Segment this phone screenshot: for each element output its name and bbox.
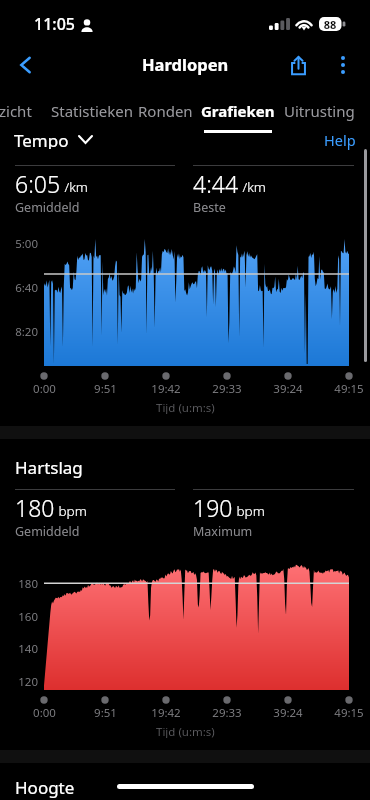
staticText: /km — [61, 178, 88, 196]
staticText: 19:42 — [151, 705, 181, 719]
staticText: Tempo — [14, 129, 69, 149]
staticText: bpm — [233, 502, 265, 520]
staticText: 0:00 — [33, 381, 56, 395]
staticText: 49:15 — [334, 381, 364, 395]
button[interactable]: Statistieken — [41, 96, 143, 134]
staticText: 6:05 — [15, 168, 61, 199]
staticText: Hardlopen — [142, 53, 229, 75]
staticText: /km — [239, 178, 266, 196]
staticText: Maximum — [193, 523, 253, 540]
staticText: Hartslag — [15, 456, 83, 479]
button[interactable]: Share — [277, 43, 319, 87]
button[interactable]: Uitrusting — [278, 96, 360, 134]
staticText: Ronden — [138, 101, 193, 121]
staticText: 29:33 — [212, 381, 242, 395]
button[interactable]: zicht — [0, 96, 40, 134]
staticText: Gemiddeld — [15, 199, 80, 216]
staticText: 29:33 — [212, 705, 242, 719]
staticText: 180 — [15, 492, 55, 523]
staticText: 49:15 — [334, 705, 364, 719]
staticText: 180 — [18, 576, 38, 590]
staticText: bpm — [55, 502, 87, 520]
staticText: 190 — [193, 492, 233, 523]
button[interactable]: Ronden — [132, 96, 198, 134]
staticText: 120 — [18, 674, 38, 688]
staticText: 9:51 — [94, 381, 117, 395]
staticText: Tijd (u:m:s) — [156, 724, 215, 738]
staticText: Tijd (u:m:s) — [156, 400, 215, 414]
staticText: Help — [324, 130, 356, 150]
staticText: 9:51 — [94, 705, 117, 719]
staticText: 5:00 — [15, 236, 38, 250]
staticText: 88 — [319, 17, 341, 31]
button[interactable]: Grafieken — [195, 96, 281, 134]
button[interactable]: More options — [323, 43, 363, 87]
staticText: Gemiddeld — [15, 523, 80, 540]
staticText: Grafieken — [201, 101, 275, 121]
staticText: Statistieken — [51, 101, 134, 121]
staticText: 11:05 — [34, 13, 75, 35]
staticText: 39:24 — [273, 381, 303, 395]
button[interactable]: Help — [324, 130, 356, 150]
staticText: 4:44 — [193, 168, 239, 199]
staticText: zicht — [0, 101, 32, 121]
staticText: 0:00 — [33, 705, 56, 719]
staticText: 39:24 — [273, 705, 303, 719]
staticText: 6:40 — [15, 280, 38, 294]
staticText: Hoogte — [15, 776, 75, 799]
button[interactable]: Back — [4, 43, 47, 87]
staticText: Beste — [193, 199, 226, 216]
button[interactable]: Hoogte — [15, 776, 75, 799]
button[interactable]: Tempo — [14, 129, 92, 149]
staticText: 19:42 — [151, 381, 181, 395]
staticText: 8:20 — [15, 324, 38, 338]
staticText: 140 — [18, 641, 38, 655]
staticText: Uitrusting — [284, 101, 355, 121]
button[interactable]: Hartslag — [15, 456, 83, 479]
staticText: 160 — [18, 609, 38, 623]
